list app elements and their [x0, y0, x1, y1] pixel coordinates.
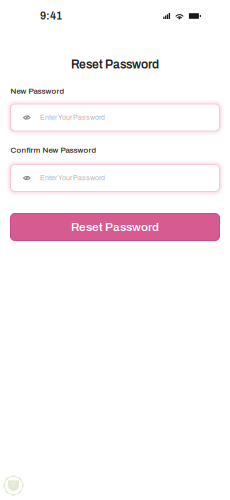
- button[interactable]: Enter Your Password: [10, 164, 219, 191]
- staticText: Reset Password: [71, 221, 159, 233]
- staticText: Reset Password: [71, 58, 159, 71]
- staticText: New Password: [10, 87, 64, 95]
- staticText: Enter Your Password: [40, 114, 105, 121]
- button[interactable]: Reset Password: [10, 213, 219, 240]
- button[interactable]: Enter Your Password: [10, 104, 219, 131]
- staticText: Confirm New Password: [10, 146, 96, 154]
- staticText: 9:41: [40, 10, 62, 22]
- staticText: Enter Your Password: [40, 174, 105, 182]
